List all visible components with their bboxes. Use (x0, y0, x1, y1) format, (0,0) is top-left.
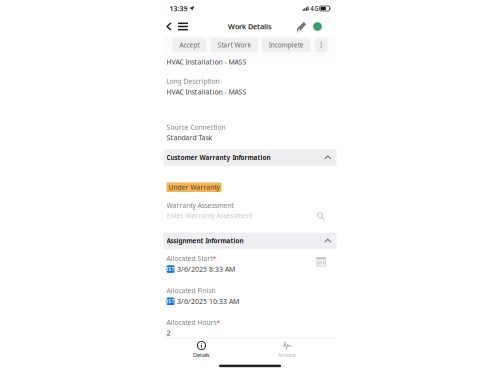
staticText: Warranty Assessment (166, 201, 233, 210)
staticText: IST (166, 298, 174, 304)
staticText: Actions (278, 351, 296, 359)
button[interactable]: Start Work (211, 38, 257, 52)
button[interactable]: Menu (174, 17, 191, 36)
button[interactable]: Details (163, 340, 239, 359)
staticText: Incomplete (269, 41, 304, 49)
button[interactable]: Attachments (293, 17, 309, 36)
staticText: IST (166, 266, 174, 272)
staticText: Allocated Hours (166, 318, 216, 327)
button[interactable]: Assignment Information (163, 232, 336, 249)
staticText: Customer Warranty Information (166, 153, 270, 162)
staticText: * (216, 318, 220, 327)
staticText: Accept (179, 41, 199, 49)
staticText: 3/6/2025 8:33 AM (177, 264, 235, 274)
button[interactable]: More actions (315, 38, 327, 52)
staticText: 13:39 (169, 4, 187, 13)
staticText: * (212, 254, 216, 263)
staticText: Start Work (218, 41, 251, 49)
staticText: 2 (166, 328, 170, 338)
staticText: Work Details (228, 22, 272, 31)
staticText: Under Warranty (168, 183, 219, 192)
staticText: Allocated Start (166, 254, 212, 263)
staticText: Enter Warranty Assessment (166, 211, 252, 220)
staticText: Allocated Finish (166, 286, 215, 295)
button[interactable]: Accept (172, 38, 206, 52)
staticText: HVAC Installation - MASS (166, 87, 246, 96)
button[interactable]: Actions (249, 340, 325, 359)
staticText: Assignment Information (166, 236, 243, 245)
staticText: Details (193, 351, 210, 359)
staticText: 3/6/2025 10:33 AM (177, 297, 239, 306)
button[interactable]: Back (163, 17, 174, 36)
staticText: HVAC Installation - MASS (166, 57, 246, 66)
button[interactable]: Customer Warranty Information (163, 149, 336, 166)
staticText: Long Description (166, 77, 219, 86)
staticText: 4G (310, 4, 318, 13)
staticText: Standard Task (166, 133, 212, 142)
button[interactable]: Job status (309, 17, 325, 36)
button[interactable]: Incomplete (262, 38, 311, 52)
staticText: Source Connection (166, 123, 225, 132)
